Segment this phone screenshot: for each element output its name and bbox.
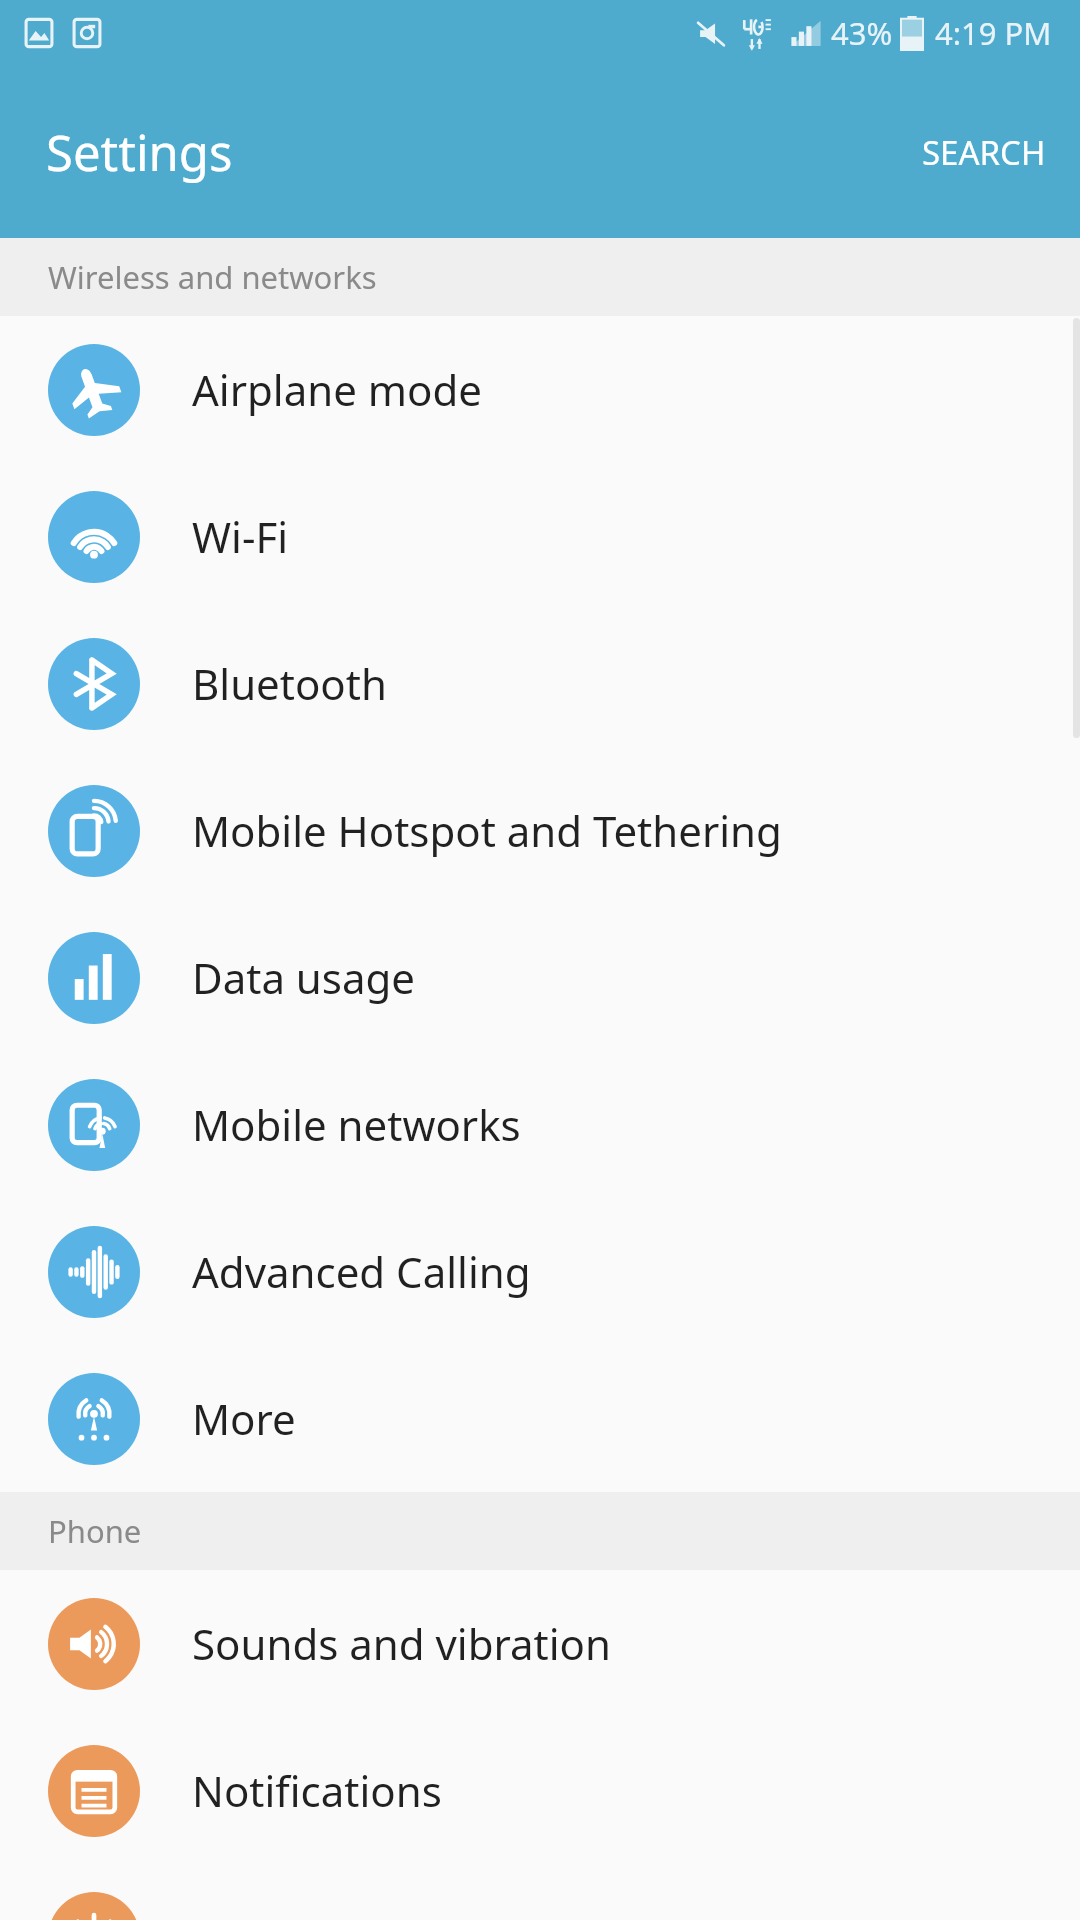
staticText: Data usage	[192, 949, 416, 1006]
button[interactable]: SEARCH	[888, 110, 1080, 195]
staticText: 4:19 PM	[935, 12, 1052, 54]
staticText: Settings	[46, 119, 233, 186]
staticText: Wireless and networks	[48, 256, 377, 298]
staticText: Mobile networks	[192, 1096, 521, 1153]
staticText: More	[192, 1390, 296, 1447]
staticText: Bluetooth	[192, 655, 387, 712]
staticText: Mobile Hotspot and Tethering	[192, 802, 782, 859]
button[interactable]: Advanced Calling	[0, 1198, 1080, 1345]
staticText: Airplane mode	[192, 361, 483, 418]
button[interactable]: Data usage	[0, 904, 1080, 1051]
button[interactable]: Notifications	[0, 1717, 1080, 1864]
staticText: Notifications	[192, 1762, 442, 1819]
button[interactable]: Airplane mode	[0, 316, 1080, 463]
button[interactable]: Wi-Fi	[0, 463, 1080, 610]
staticText: Sounds and vibration	[192, 1615, 611, 1672]
button[interactable]: Sounds and vibration	[0, 1570, 1080, 1717]
button[interactable]: Mobile networks	[0, 1051, 1080, 1198]
button[interactable]: Mobile Hotspot and Tethering	[0, 757, 1080, 904]
staticText: 43%	[831, 12, 893, 54]
button[interactable]: Display	[0, 1864, 1080, 1920]
staticText: Phone	[48, 1510, 142, 1552]
button[interactable]: Bluetooth	[0, 610, 1080, 757]
staticText: Advanced Calling	[192, 1243, 531, 1300]
button[interactable]: More	[0, 1345, 1080, 1492]
staticText: SEARCH	[922, 130, 1046, 175]
staticText: Wi-Fi	[192, 508, 289, 565]
